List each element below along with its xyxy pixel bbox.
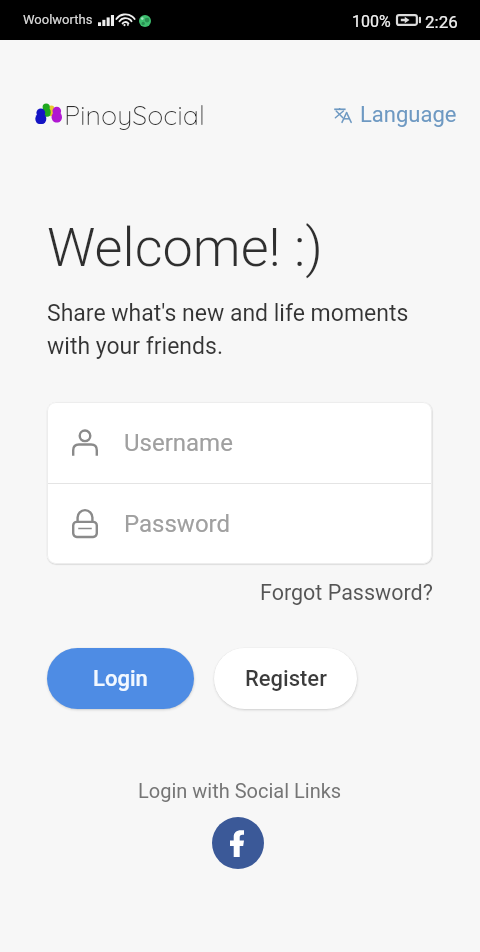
staticText: Woolworths bbox=[23, 12, 93, 27]
button[interactable]: Login with Facebook bbox=[212, 817, 264, 869]
staticText: Share what's new and life moments with y… bbox=[47, 300, 409, 359]
staticText: Username bbox=[124, 429, 233, 457]
staticText: 2:26 bbox=[425, 12, 458, 32]
staticText: Login with Social Links bbox=[138, 779, 342, 802]
staticText: Login bbox=[93, 666, 148, 692]
button[interactable]: Forgot Password? bbox=[260, 580, 433, 605]
staticText: Password bbox=[124, 510, 231, 538]
button[interactable]: Username bbox=[47, 402, 432, 483]
staticText: PinoySocial bbox=[64, 98, 205, 132]
button[interactable]: Language bbox=[330, 98, 461, 132]
button[interactable]: Register bbox=[214, 648, 357, 709]
button[interactable]: Password bbox=[47, 484, 432, 564]
staticText: Language bbox=[360, 102, 457, 128]
staticText: Register bbox=[245, 666, 327, 692]
staticText: 100% bbox=[352, 12, 391, 31]
staticText: Welcome! :) bbox=[47, 216, 323, 279]
staticText: Forgot Password? bbox=[260, 580, 433, 605]
button[interactable]: Login bbox=[47, 648, 194, 709]
